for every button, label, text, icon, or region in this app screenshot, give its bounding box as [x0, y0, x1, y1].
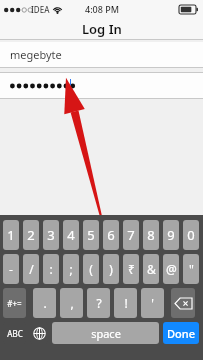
button[interactable]: 0 [183, 220, 199, 250]
staticText: #+= [7, 298, 22, 309]
button[interactable]: ( [83, 254, 99, 284]
button[interactable]: Switch keyboard [30, 322, 48, 344]
button[interactable]: : [43, 254, 59, 284]
staticText: Log In [82, 20, 122, 38]
staticText: 4 [67, 226, 75, 244]
button[interactable]: ; [63, 254, 79, 284]
staticText: : [49, 261, 53, 277]
button[interactable]: ) [103, 254, 119, 284]
button[interactable]: Backspace [171, 288, 195, 318]
button[interactable]: / [23, 254, 39, 284]
staticText: 2 [27, 226, 35, 244]
button[interactable]: ' [141, 288, 164, 318]
button[interactable]: 1 [3, 220, 19, 250]
staticText: IDEA [31, 4, 50, 15]
staticText: ( [89, 261, 93, 277]
button[interactable]: , [60, 288, 83, 318]
button[interactable]: 9 [163, 220, 179, 250]
button[interactable]: . [33, 288, 56, 318]
button[interactable]: " [183, 254, 199, 284]
button[interactable]: ? [87, 288, 110, 318]
staticText: 5 [87, 226, 95, 244]
staticText: ₹ [128, 261, 135, 277]
button[interactable]: ₹ [123, 254, 139, 284]
staticText: 0 [187, 226, 195, 244]
staticText: 3 [47, 226, 55, 244]
staticText: 8 [147, 226, 155, 244]
button[interactable]: ABC [3, 322, 26, 344]
staticText: ! [124, 295, 128, 311]
staticText: space [91, 326, 121, 341]
button[interactable]: & [143, 254, 159, 284]
button[interactable]: Done [163, 322, 199, 344]
staticText: ; [69, 261, 73, 277]
button[interactable]: - [3, 254, 19, 284]
button[interactable]: #+= [3, 288, 26, 318]
staticText: ABC [7, 328, 23, 339]
button[interactable]: 6 [103, 220, 119, 250]
button[interactable]: 2 [23, 220, 39, 250]
button[interactable]: @ [163, 254, 179, 284]
button[interactable]: ! [114, 288, 137, 318]
staticText: / [29, 261, 34, 277]
button[interactable]: 7 [123, 220, 139, 250]
button[interactable]: 4 [63, 220, 79, 250]
staticText: 7 [127, 226, 135, 244]
staticText: 4:08 PM [85, 3, 119, 15]
staticText: ? [96, 295, 102, 311]
button[interactable]: 5 [83, 220, 99, 250]
button[interactable]: 8 [143, 220, 159, 250]
button[interactable]: space [52, 322, 159, 344]
staticText: ' [151, 295, 154, 311]
staticText: 1 [7, 226, 15, 244]
button[interactable]: 3 [43, 220, 59, 250]
staticText: ) [109, 261, 113, 277]
button[interactable]: megebyte [0, 42, 203, 67]
button[interactable] [0, 73, 203, 98]
staticText: & [147, 261, 156, 277]
staticText: . [43, 295, 47, 311]
staticText: 6 [107, 226, 115, 244]
staticText: @ [166, 261, 177, 277]
staticText: - [9, 261, 13, 277]
staticText: 9 [167, 226, 175, 244]
staticText: Done [167, 326, 195, 341]
staticText: , [70, 295, 74, 311]
staticText: " [189, 261, 194, 277]
staticText: megebyte [10, 47, 62, 62]
